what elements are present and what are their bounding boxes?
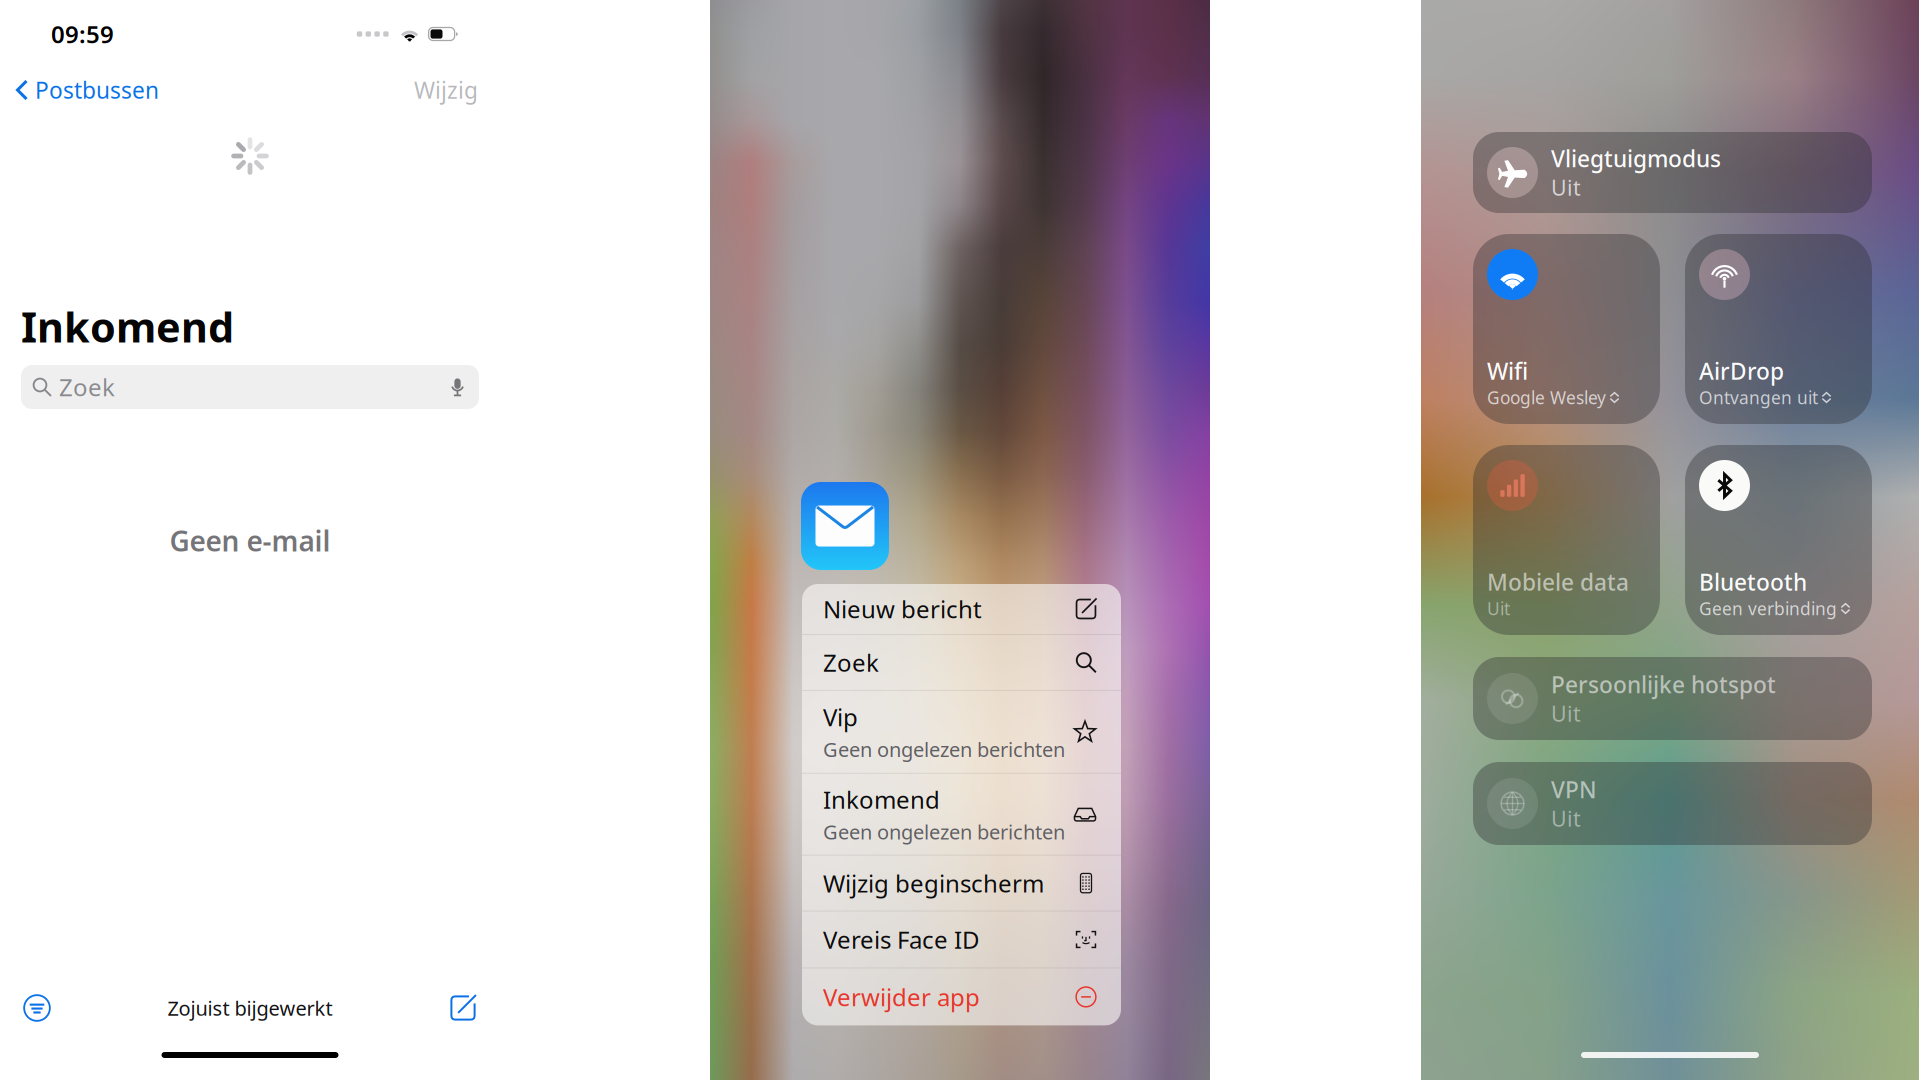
button[interactable]: Vip <box>802 691 1121 773</box>
staticText: Geen e-mail <box>169 522 330 559</box>
staticText: Uit <box>1551 699 1581 728</box>
button[interactable]: Wifi <box>1473 234 1660 424</box>
staticText: 09:59 <box>51 18 114 50</box>
button[interactable]: VPN <box>1473 762 1872 845</box>
button[interactable]: Nieuw bericht <box>802 584 1121 634</box>
button[interactable]: Filter <box>13 986 61 1030</box>
button[interactable]: Nieuw bericht <box>439 986 487 1030</box>
staticText: Wijzig beginscherm <box>823 867 1044 899</box>
button[interactable]: Postbussen <box>0 70 169 110</box>
button[interactable]: Wijzig beginscherm <box>802 856 1121 911</box>
staticText: Nieuw bericht <box>823 593 982 625</box>
staticText: Uit <box>1551 804 1581 833</box>
staticText: Geen ongelezen berichten <box>823 736 1065 763</box>
staticText: VPN <box>1551 774 1597 804</box>
staticText: Persoonlijke hotspot <box>1551 669 1776 699</box>
staticText: Zoek <box>823 646 879 678</box>
staticText: Uit <box>1551 173 1581 202</box>
staticText: Postbussen <box>35 75 159 105</box>
staticText: Zoek <box>59 371 115 403</box>
staticText: Mobiele data <box>1487 567 1629 597</box>
staticText: Vereis Face ID <box>823 924 980 955</box>
button[interactable]: Persoonlijke hotspot <box>1473 657 1872 740</box>
staticText: Wifi <box>1487 356 1528 386</box>
staticText: Google Wesley <box>1487 386 1606 409</box>
staticText: Ontvangen uit <box>1699 386 1818 409</box>
button[interactable]: Vereis Face ID <box>802 911 1121 967</box>
button[interactable]: Vliegtuigmodus <box>1473 132 1872 213</box>
staticText: Bluetooth <box>1699 567 1807 597</box>
staticText: Uit <box>1487 597 1510 620</box>
button[interactable]: Bluetooth <box>1685 445 1872 635</box>
staticText: Geen ongelezen berichten <box>823 818 1065 845</box>
button[interactable]: Wijzig <box>400 70 492 110</box>
staticText: Vliegtuigmodus <box>1551 143 1721 173</box>
button[interactable]: Inkomend <box>802 774 1121 855</box>
button[interactable]: Mobiele data <box>1473 445 1660 635</box>
staticText: Verwijder app <box>823 981 980 1013</box>
staticText: Vip <box>823 701 858 733</box>
staticText: Wijzig <box>414 75 478 105</box>
staticText: Zojuist bijgewerkt <box>167 995 332 1021</box>
button[interactable]: AirDrop <box>1685 234 1872 424</box>
staticText: Inkomend <box>823 783 940 815</box>
staticText: Inkomend <box>21 299 234 354</box>
staticText: AirDrop <box>1699 356 1784 386</box>
button[interactable]: Zoek <box>802 635 1121 690</box>
staticText: Geen verbinding <box>1699 597 1837 620</box>
button[interactable]: Verwijder app <box>802 968 1121 1025</box>
